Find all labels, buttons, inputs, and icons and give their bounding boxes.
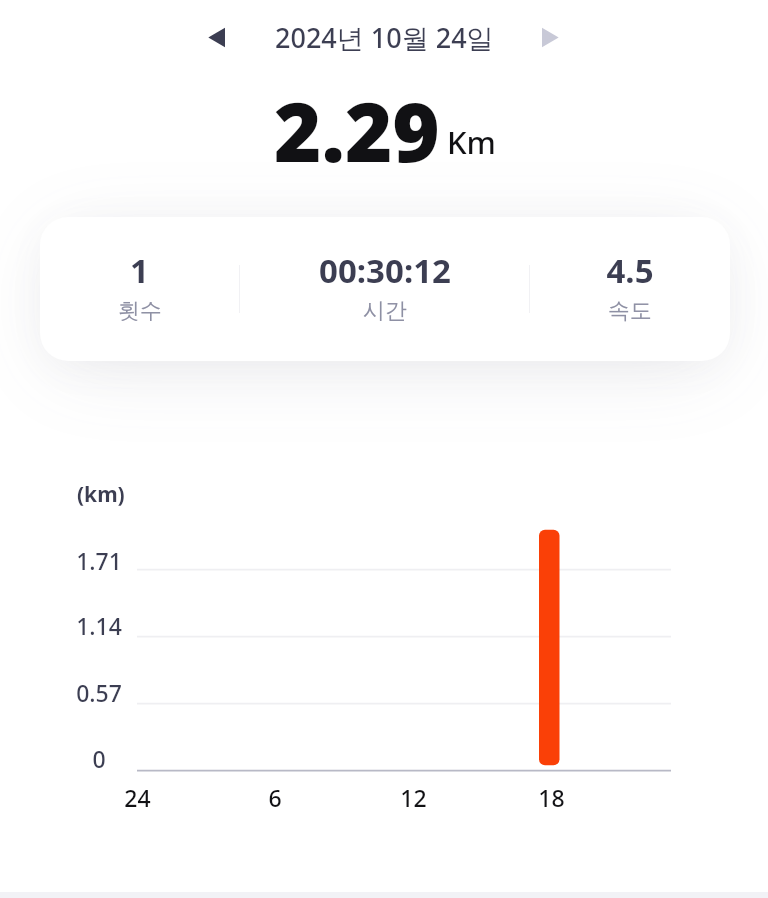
staticText: 1.14 <box>76 610 122 641</box>
staticText: 시간 <box>363 297 407 325</box>
staticText: (km) <box>77 480 125 509</box>
staticText: 12 <box>400 782 427 813</box>
staticText: 00:30:12 <box>319 248 451 293</box>
button[interactable]: 4.5 <box>530 217 730 361</box>
staticText: 24 <box>124 782 151 813</box>
staticText: 4.5 <box>606 248 654 293</box>
staticText: 2024년 10월 24일 <box>275 19 494 56</box>
staticText: 횟수 <box>118 297 162 325</box>
staticText: 속도 <box>608 297 652 325</box>
button[interactable]: 00:30:12 <box>240 217 529 361</box>
staticText: 1 <box>130 248 149 293</box>
staticText: 0.57 <box>76 677 122 708</box>
staticText: 0 <box>92 743 106 774</box>
button[interactable]: Next day <box>527 15 572 60</box>
button[interactable]: 1 <box>40 217 239 361</box>
button[interactable]: Previous day <box>195 15 240 60</box>
staticText: 6 <box>268 782 282 813</box>
staticText: 2.29 <box>274 75 440 185</box>
staticText: Km <box>447 121 496 163</box>
staticText: 1.71 <box>76 545 122 576</box>
staticText: 18 <box>538 782 565 813</box>
